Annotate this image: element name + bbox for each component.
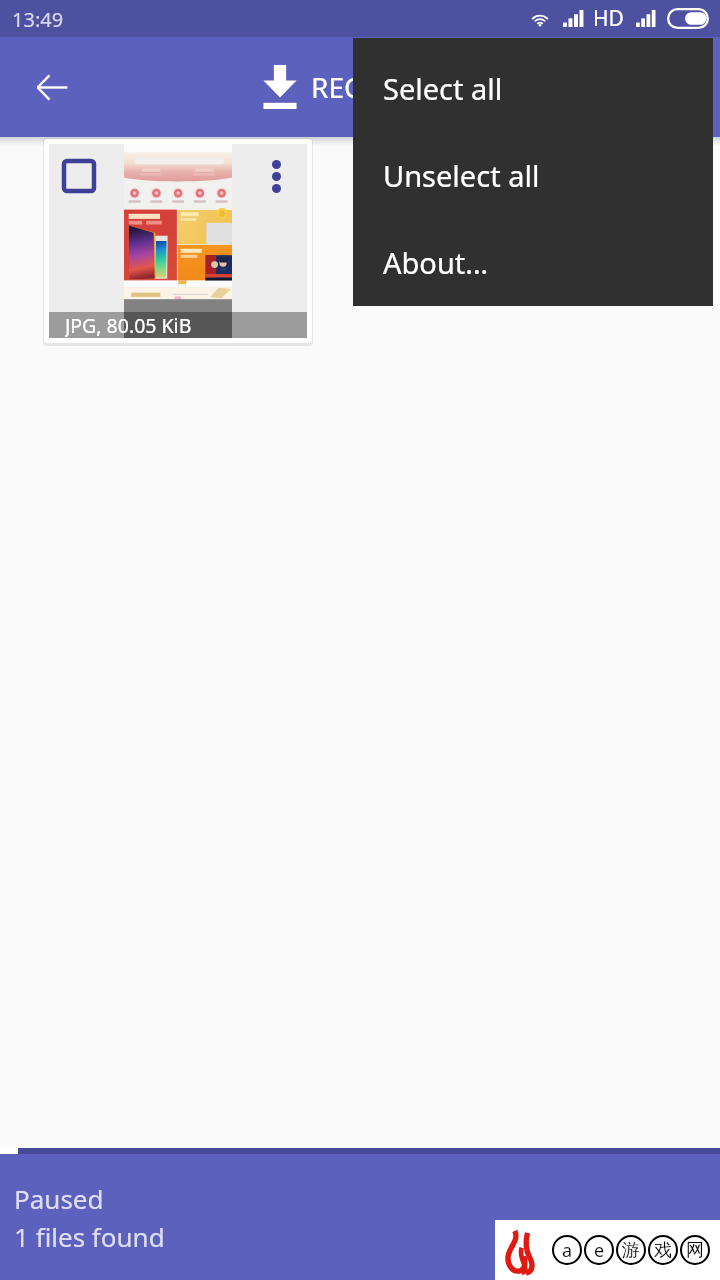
button[interactable]: Select all — [353, 45, 713, 132]
button[interactable]: More options — [254, 154, 298, 198]
staticText: 网 — [686, 1239, 704, 1262]
staticText: e — [594, 1238, 605, 1263]
staticText: Paused — [14, 1181, 104, 1216]
staticText: Unselect all — [383, 156, 540, 195]
staticText: 游 — [622, 1239, 640, 1262]
staticText: a — [562, 1238, 573, 1263]
button[interactable]: About… — [353, 219, 713, 306]
staticText: JPG, 80.05 KiB — [65, 312, 192, 338]
staticText: About… — [383, 243, 489, 282]
staticText: 13:49 — [12, 6, 64, 33]
staticText: 1 files found — [14, 1219, 165, 1254]
staticText: Select all — [383, 69, 503, 108]
button[interactable]: Unselect all — [353, 132, 713, 219]
staticText: RECEIVE — [311, 68, 420, 106]
staticText: HD — [593, 4, 624, 33]
staticText: 戏 — [654, 1239, 672, 1262]
button[interactable]: Select file — [44, 139, 312, 343]
button[interactable]: Select file — [62, 159, 96, 193]
button[interactable]: Back — [23, 58, 81, 116]
